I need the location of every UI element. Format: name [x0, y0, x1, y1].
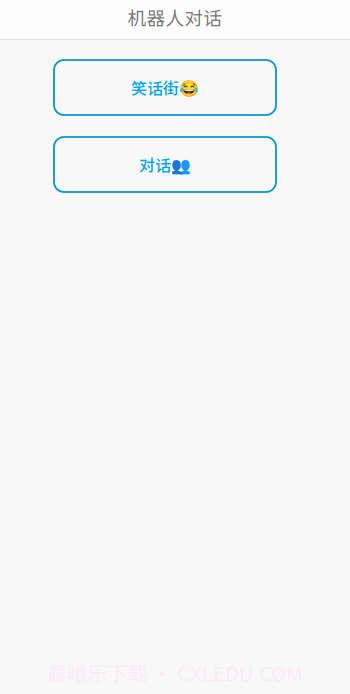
button[interactable]: 对话👥: [54, 137, 276, 192]
staticText: 机器人对话: [127, 3, 222, 30]
staticText: 对话👥: [139, 153, 191, 176]
button[interactable]: 笑话街😂: [54, 60, 276, 115]
staticText: 笑话街😂: [131, 76, 199, 99]
staticText: 晨曦乐下载 · CXLEDU.COM: [47, 657, 303, 687]
